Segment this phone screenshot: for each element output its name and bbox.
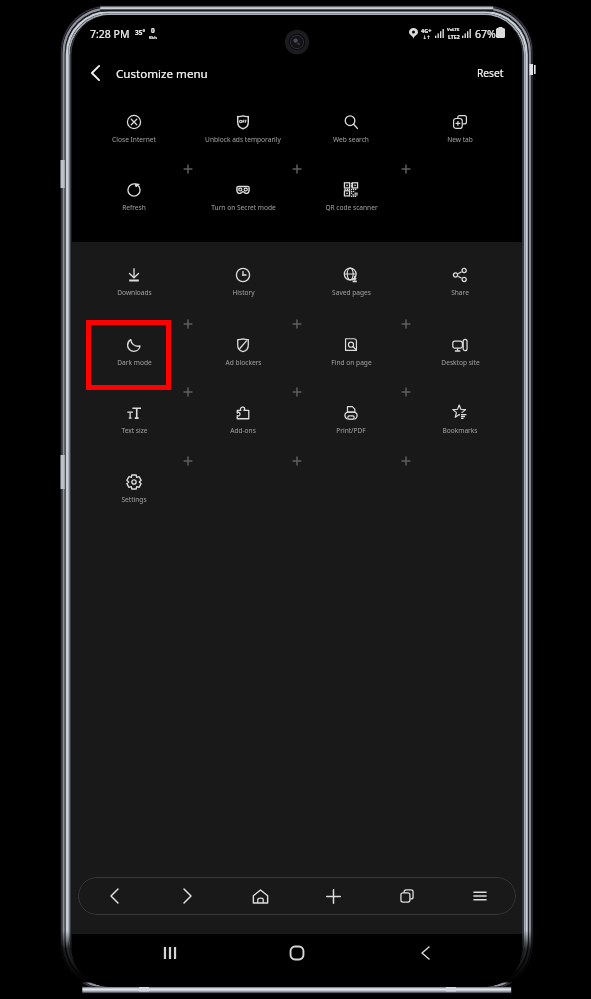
button[interactable]: Bookmarks <box>408 396 512 446</box>
staticText: Reset <box>477 66 504 80</box>
staticText: Close Internet <box>112 135 156 144</box>
staticText: 7:28 PM <box>90 27 130 41</box>
staticText: Turn on Secret mode <box>211 203 276 212</box>
staticText: Ad blockers <box>225 358 262 367</box>
button[interactable]: Menu <box>443 877 516 915</box>
staticText: 4G+ <box>421 27 432 35</box>
staticText: ↓↑ <box>423 35 431 40</box>
staticText: Unblock ads temporarily <box>205 135 281 144</box>
button[interactable]: Forward <box>151 877 224 915</box>
button[interactable]: Back <box>403 934 447 972</box>
staticText: Kb/s <box>149 35 157 40</box>
button[interactable]: Add-ons <box>191 396 295 446</box>
staticText: LTE2 <box>448 33 460 40</box>
button[interactable]: Text size <box>82 396 186 446</box>
button[interactable]: Dark mode <box>82 328 186 378</box>
staticText: Find on page <box>331 358 372 367</box>
staticText: 67% <box>475 27 496 41</box>
staticText: History <box>232 288 255 297</box>
button[interactable]: Home <box>275 934 319 972</box>
staticText: Bookmarks <box>442 426 478 435</box>
button[interactable]: Reset <box>466 59 514 87</box>
staticText: Share <box>451 288 469 297</box>
button[interactable]: Share <box>408 258 512 308</box>
button[interactable]: Close Internet <box>82 105 186 155</box>
button[interactable]: Tabs <box>370 877 443 915</box>
button[interactable]: Home <box>224 877 297 915</box>
button[interactable]: Back <box>79 57 111 89</box>
button[interactable]: Turn on Secret mode <box>191 173 295 223</box>
button[interactable]: Desktop site <box>408 328 512 378</box>
button[interactable]: Web search <box>299 105 403 155</box>
staticText: 35° <box>135 28 146 37</box>
button[interactable]: History <box>191 258 295 308</box>
button[interactable]: QR code scanner <box>299 173 403 223</box>
staticText: Text size <box>121 426 148 435</box>
staticText: Print/PDF <box>336 426 366 435</box>
button[interactable]: New tab <box>408 105 512 155</box>
staticText: Add-ons <box>230 426 256 435</box>
button[interactable]: Settings <box>82 465 186 515</box>
button[interactable]: Find on page <box>299 328 403 378</box>
staticText: Saved pages <box>332 288 371 297</box>
button[interactable]: Saved pages <box>299 258 403 308</box>
button[interactable]: Print/PDF <box>299 396 403 446</box>
button[interactable]: New tab <box>297 877 370 915</box>
staticText: New tab <box>447 135 473 144</box>
staticText: Settings <box>121 495 147 504</box>
staticText: 0 <box>151 26 155 35</box>
staticText: VoLTE <box>447 27 460 33</box>
button[interactable]: Back <box>78 877 151 915</box>
staticText: Customize menu <box>116 66 208 82</box>
button[interactable]: Downloads <box>82 258 186 308</box>
button[interactable]: Ad blockers <box>191 328 295 378</box>
staticText: Dark mode <box>117 358 152 367</box>
staticText: Desktop site <box>441 358 480 367</box>
button[interactable]: Unblock ads temporarily <box>191 105 295 155</box>
button[interactable]: Recents <box>148 934 192 972</box>
staticText: QR code scanner <box>325 203 378 212</box>
staticText: Downloads <box>117 288 152 297</box>
staticText: Refresh <box>122 203 146 212</box>
staticText: Web search <box>333 135 369 144</box>
button[interactable]: Refresh <box>82 173 186 223</box>
